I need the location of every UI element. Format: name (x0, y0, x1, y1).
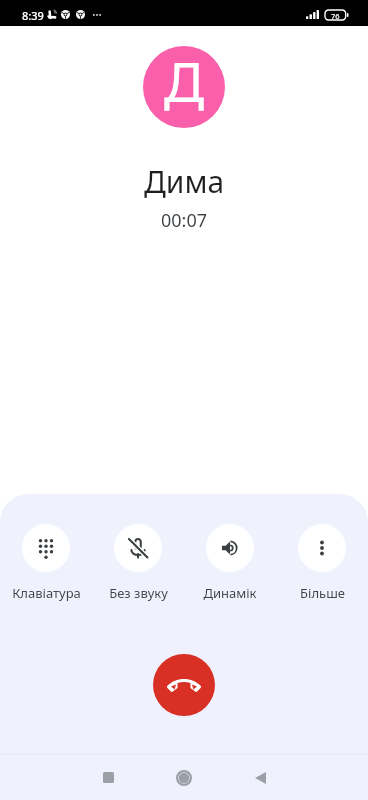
button[interactable]: Speaker (184, 524, 276, 602)
other: More (311, 537, 333, 559)
staticText: Більше (300, 584, 345, 602)
button[interactable]: Back (232, 755, 288, 800)
button[interactable]: Mute (92, 524, 184, 602)
staticText: Без звуку (109, 584, 168, 602)
button[interactable]: Home (156, 755, 212, 800)
staticText: Д (164, 46, 205, 118)
other: Mute (127, 537, 149, 559)
button[interactable]: Keypad (0, 524, 92, 602)
staticText: 00:07 (161, 208, 208, 233)
staticText: Клавіатура (12, 584, 81, 602)
staticText: Динамік (203, 584, 257, 602)
staticText: Дима (144, 161, 225, 202)
other: Keypad (35, 537, 57, 559)
button[interactable]: End call (153, 654, 215, 716)
button[interactable]: More (276, 524, 368, 602)
other: Speaker (219, 537, 241, 559)
staticText: 8:39 (22, 8, 44, 23)
button[interactable]: Recents (80, 755, 136, 800)
staticText: 76 (331, 11, 340, 21)
